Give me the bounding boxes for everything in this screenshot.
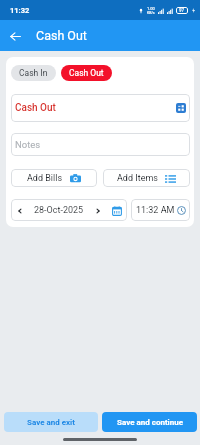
staticText: Notes [15,139,41,150]
staticText: Add Items [117,173,158,184]
button[interactable]: Notes [11,133,190,156]
staticText: 11:32 AM [136,205,175,216]
staticText: Save and exit [27,418,75,427]
staticText: 11:32 [10,6,30,15]
staticText: 97 [179,8,185,13]
staticText: 1.00 [147,6,155,11]
staticText: Cash In [19,68,48,78]
staticText: Save and continue [117,418,183,427]
staticText: KB/s [147,11,155,15]
staticText: Cash Out [69,68,104,78]
button[interactable]: Add Bills [11,169,97,187]
staticText: Cash Out [15,102,176,114]
button[interactable]: Add Items [103,169,190,187]
button[interactable]: Save and exit [4,412,98,432]
button[interactable]: Back [0,21,30,51]
button[interactable]: 28-Oct-2025 [11,199,127,221]
staticText: Add Bills [27,173,63,184]
staticText: Cash Out [36,28,87,43]
button[interactable]: 11:32 AM [131,199,190,221]
button[interactable]: Cash Out [61,65,112,81]
staticText: 28-Oct-2025 [34,205,84,216]
button[interactable]: Cash In [11,65,56,81]
button[interactable]: Save and continue [102,412,197,432]
button[interactable]: Cash Out [11,94,190,122]
